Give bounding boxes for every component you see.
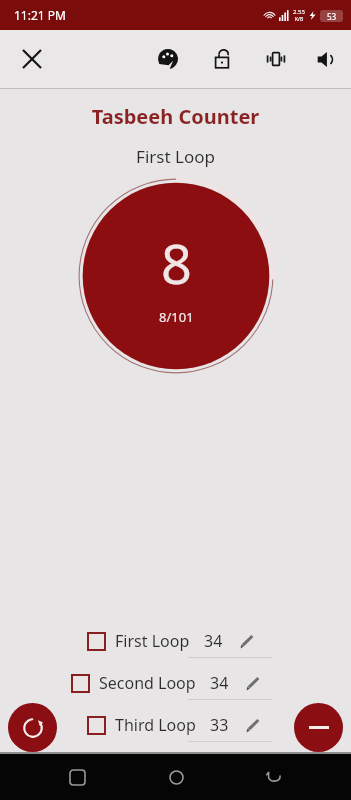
button[interactable]: Second Loop checkbox	[72, 672, 351, 694]
button[interactable]: Back	[253, 756, 295, 798]
button[interactable]: Third Loop checkbox	[88, 717, 105, 734]
button[interactable]: Recent apps	[56, 756, 98, 798]
button[interactable]: Lock screen	[203, 40, 241, 78]
staticText: 34	[204, 630, 223, 652]
staticText: 2.55	[293, 8, 305, 16]
button[interactable]: Decrease count	[294, 703, 343, 752]
button[interactable]: Vibration	[257, 40, 295, 78]
button[interactable]: Theme colour	[149, 40, 187, 78]
staticText: Second Loop	[99, 672, 196, 694]
button[interactable]: Close	[12, 39, 52, 79]
staticText: First Loop	[0, 145, 351, 168]
staticText: K/B	[295, 16, 304, 23]
staticText: 53	[327, 11, 337, 21]
staticText: First Loop	[115, 630, 190, 652]
staticText: 11:21 PM	[14, 7, 66, 23]
staticText: Third Loop	[115, 714, 196, 736]
button[interactable]: Third Loop checkbox	[88, 714, 351, 736]
button[interactable]: First Loop checkbox	[88, 633, 105, 650]
staticText: 33	[210, 714, 229, 736]
button[interactable]: Reset counter	[8, 703, 57, 752]
button[interactable]: Edit Third Loop target	[241, 714, 263, 736]
button[interactable]: Edit First Loop target	[235, 630, 257, 652]
staticText: 8	[161, 226, 192, 300]
button[interactable]: Second Loop checkbox	[72, 675, 89, 692]
button[interactable]: First Loop checkbox	[88, 630, 351, 652]
staticText: 8/101	[159, 308, 194, 326]
staticText: 34	[210, 672, 229, 694]
button[interactable]: Edit Second Loop target	[241, 672, 263, 694]
staticText: Tasbeeh Counter	[0, 103, 351, 130]
button[interactable]: Home	[155, 756, 197, 798]
button[interactable]: Sound	[307, 40, 345, 78]
